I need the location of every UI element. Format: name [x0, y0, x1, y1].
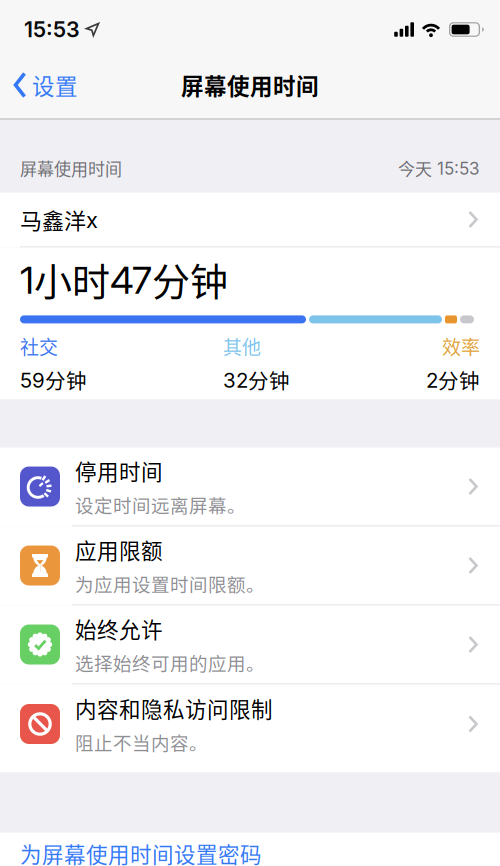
staticText: 马鑫洋x — [20, 204, 98, 235]
button[interactable]: 停用时间 — [0, 447, 500, 526]
staticText: 阻止不当内容。 — [75, 729, 208, 755]
staticText: 2分钟 — [426, 365, 480, 395]
staticText: 始终允许 — [75, 613, 163, 644]
staticText: 1小时47分钟 — [20, 251, 228, 306]
staticText: 应用限额 — [75, 534, 163, 565]
staticText: 屏幕使用时间 — [20, 156, 122, 180]
button[interactable]: 始终允许 — [0, 605, 500, 684]
staticText: 设定时间远离屏幕。 — [75, 491, 246, 518]
staticText: 为屏幕使用时间设置密码 — [20, 838, 262, 866]
staticText: 内容和隐私访问限制 — [75, 692, 273, 724]
staticText: 59分钟 — [20, 365, 87, 395]
staticText: 选择始终可用的应用。 — [75, 649, 265, 676]
staticText: 32分钟 — [223, 365, 290, 395]
button[interactable]: 设置 — [0, 69, 78, 101]
staticText: 今天 15:53 — [398, 156, 480, 180]
button[interactable]: 为屏幕使用时间设置密码 — [0, 832, 500, 866]
staticText: 设置 — [32, 69, 78, 101]
staticText: 屏幕使用时间 — [181, 69, 319, 101]
button[interactable]: 应用限额 — [0, 526, 500, 605]
button[interactable]: 马鑫洋x — [0, 192, 500, 247]
staticText: 为应用设置时间限额。 — [75, 570, 265, 597]
staticText: 15:53 — [24, 16, 80, 42]
staticText: 其他 — [223, 332, 261, 360]
staticText: 效率 — [442, 332, 480, 360]
staticText: 社交 — [20, 332, 58, 360]
button[interactable]: 内容和隐私访问限制 — [0, 684, 500, 772]
staticText: 停用时间 — [75, 455, 163, 486]
